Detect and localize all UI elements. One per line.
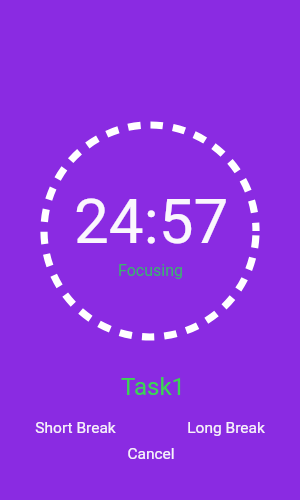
staticText: Cancel	[127, 445, 175, 463]
button[interactable]: Short Break	[27, 413, 124, 443]
staticText: 24:57	[74, 185, 229, 258]
button[interactable]: Task1	[108, 365, 193, 409]
staticText: Focusing	[118, 261, 183, 280]
button[interactable]: Cancel	[119, 439, 183, 469]
staticText: Task1	[121, 373, 186, 401]
staticText: Short Break	[35, 419, 116, 437]
button[interactable]: Long Break	[179, 413, 273, 443]
staticText: Long Break	[187, 419, 265, 437]
